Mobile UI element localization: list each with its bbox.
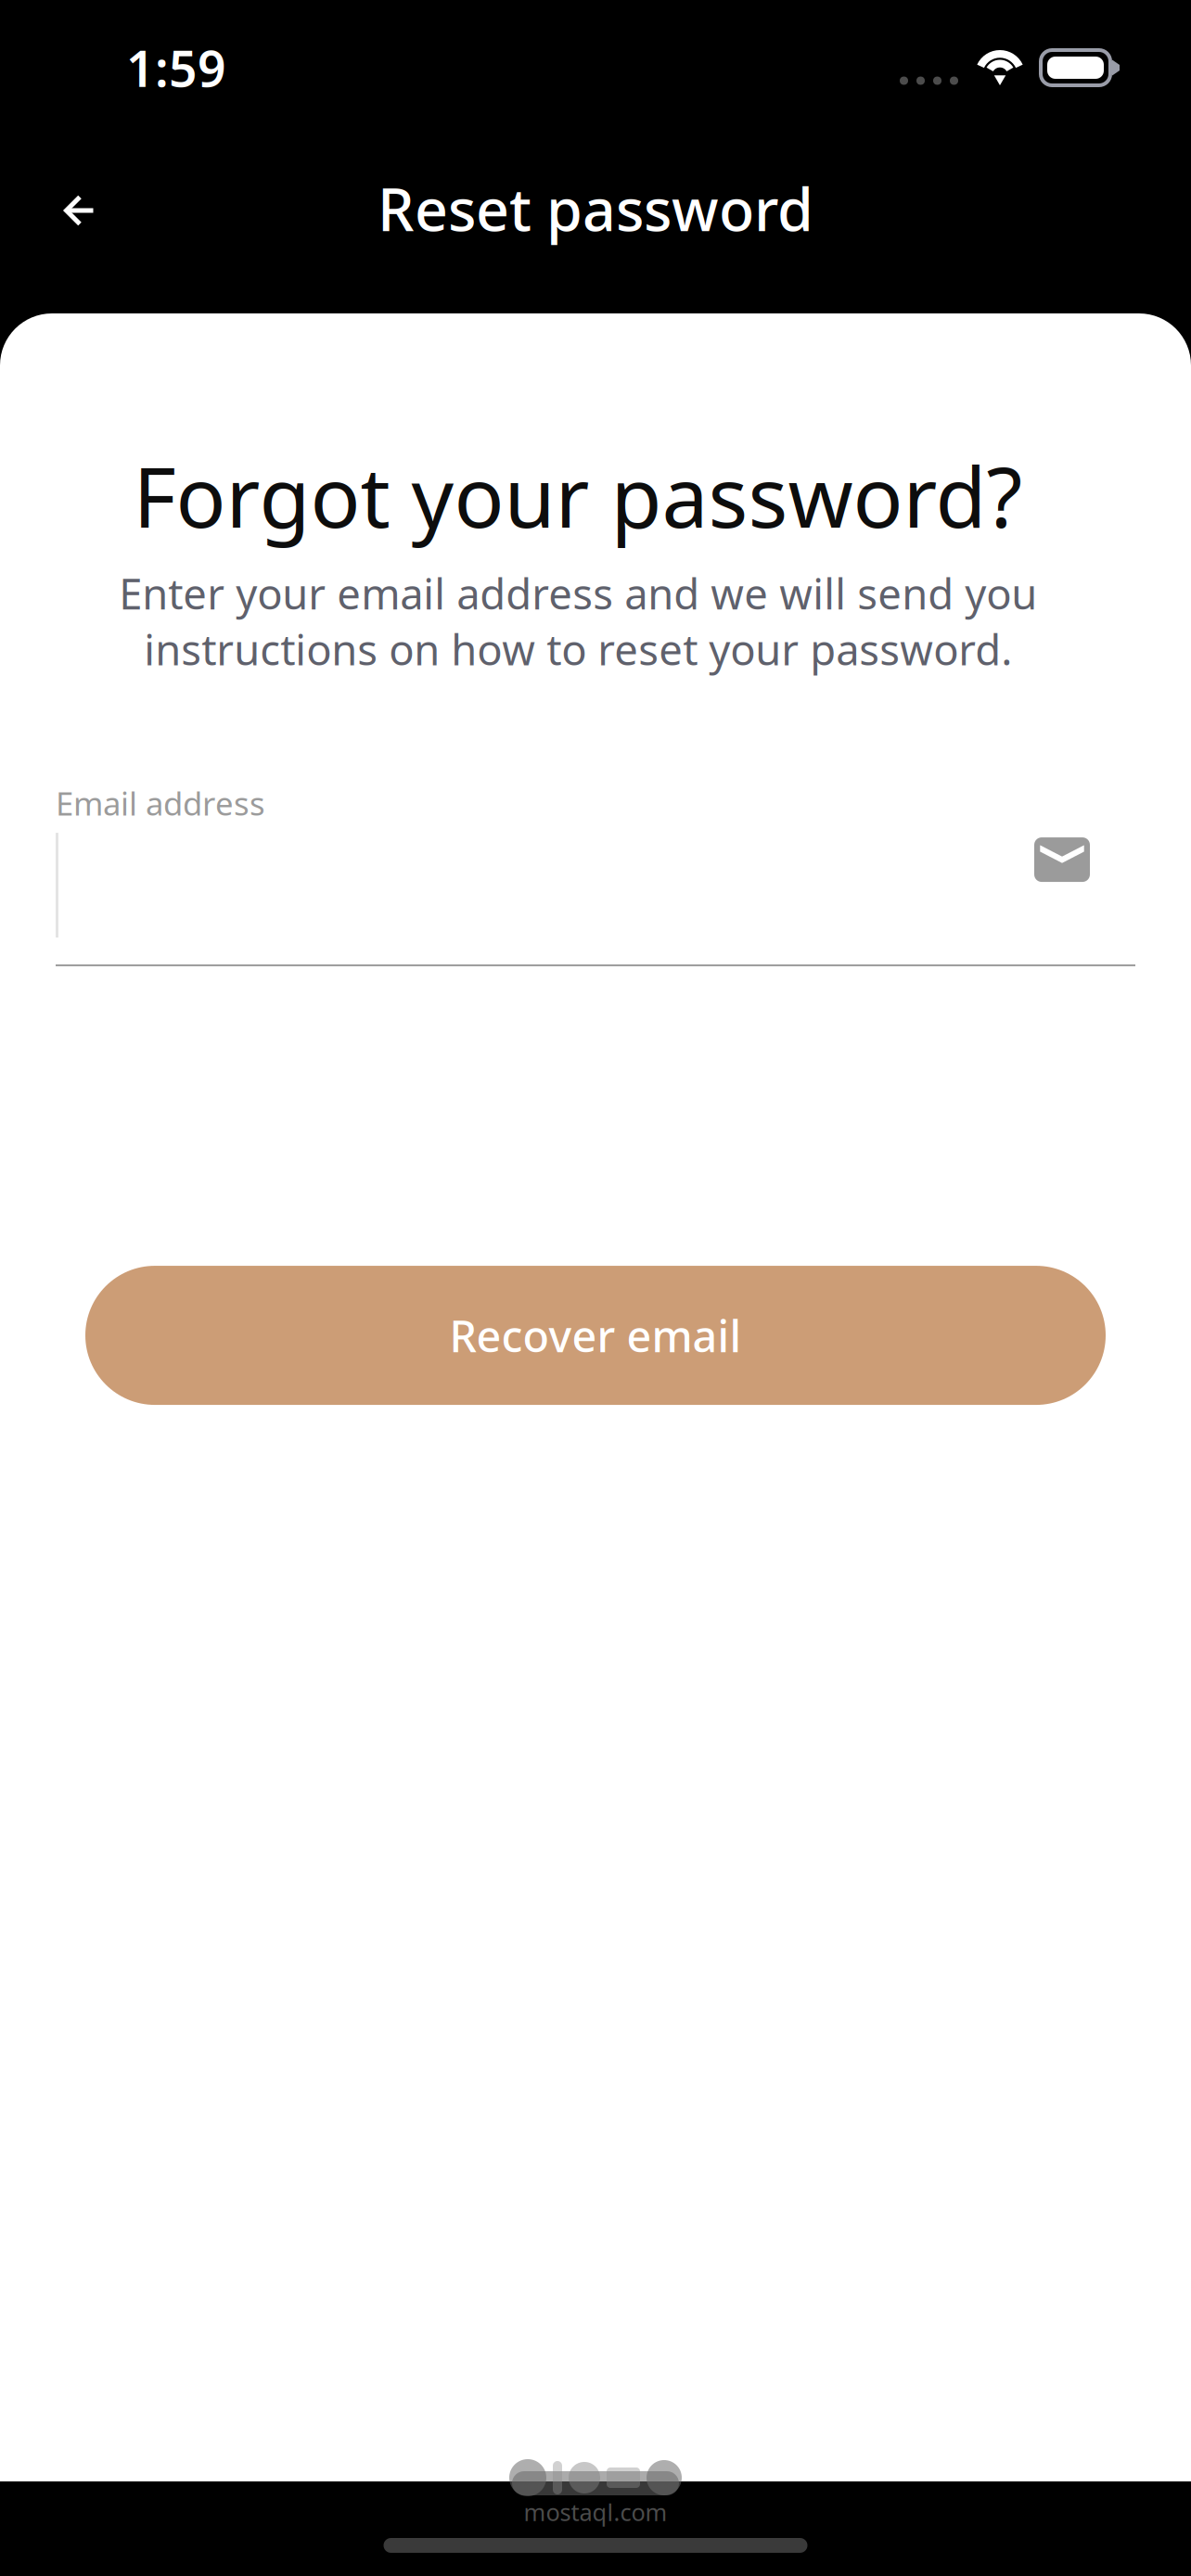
button[interactable]: Back	[29, 159, 131, 261]
staticText: Recover email	[449, 1307, 742, 1364]
staticText: Email address	[56, 782, 265, 824]
button[interactable]: Recover email	[85, 1266, 1106, 1405]
staticText: Enter your email address and we will sen…	[119, 565, 1037, 677]
staticText: Reset password	[378, 170, 813, 247]
staticText: mostaql.com	[524, 2496, 667, 2527]
staticText: 1:59	[126, 35, 226, 101]
button[interactable]: Email address	[56, 782, 1135, 966]
staticText: Forgot your password?	[133, 440, 1023, 550]
